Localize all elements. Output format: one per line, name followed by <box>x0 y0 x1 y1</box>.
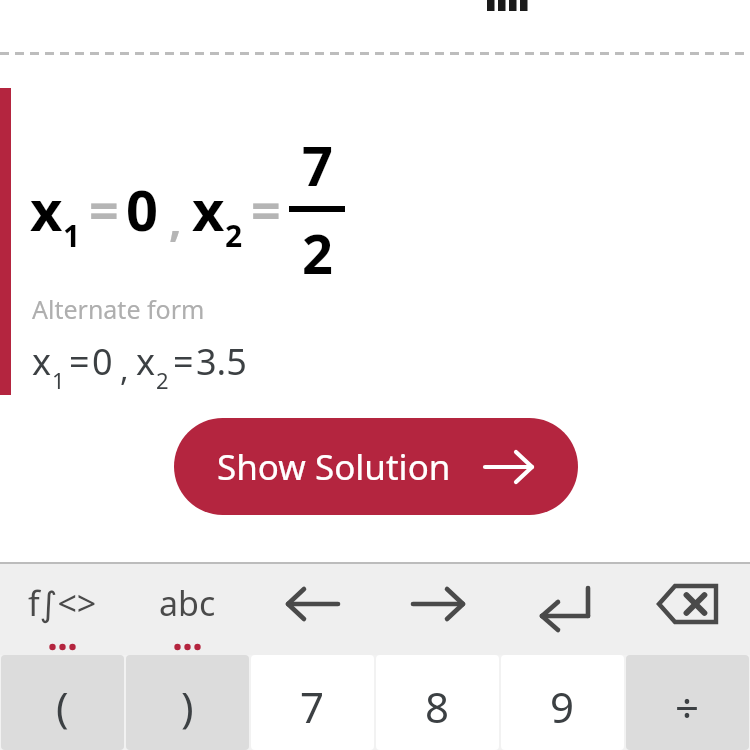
button[interactable]: f∫<> <box>0 564 125 655</box>
button[interactable]: ( <box>1 655 124 750</box>
staticText: Show Solution <box>217 443 451 491</box>
staticText: = <box>89 174 119 245</box>
button[interactable]: ) <box>126 655 249 750</box>
staticText: , <box>169 189 182 249</box>
button[interactable]: Show Solution <box>174 418 578 515</box>
staticText: 2 <box>156 365 169 395</box>
button[interactable]: abc <box>125 564 250 655</box>
staticText: abc <box>159 580 216 626</box>
staticText: 0 <box>92 337 113 386</box>
button[interactable]: Backspace <box>625 564 750 655</box>
staticText: 7 <box>302 128 333 202</box>
staticText: 8 <box>425 678 450 735</box>
staticText: 1 <box>63 215 81 256</box>
staticText: f∫<> <box>28 580 97 626</box>
button[interactable]: Enter <box>500 564 625 655</box>
staticText: 1 <box>52 365 65 395</box>
staticText: Alternate form <box>32 292 205 326</box>
staticText: ) <box>181 678 194 735</box>
staticText: 2 <box>225 215 243 256</box>
staticText: ( <box>56 678 69 735</box>
button[interactable]: Move left <box>250 564 375 655</box>
button[interactable]: 9 <box>501 655 624 750</box>
staticText: ÷ <box>675 678 700 735</box>
staticText: , <box>120 347 129 391</box>
staticText: x <box>32 337 52 386</box>
staticText: = <box>251 174 281 245</box>
staticText: x <box>192 171 225 247</box>
staticText: 3.5 <box>196 337 247 386</box>
staticText: = <box>173 337 194 386</box>
staticText: x <box>30 171 63 247</box>
button[interactable]: Move right <box>375 564 500 655</box>
button[interactable]: ÷ <box>626 655 749 750</box>
staticText: 2 <box>302 216 333 290</box>
staticText: 7 <box>300 678 325 735</box>
staticText: 9 <box>550 678 575 735</box>
button[interactable]: 7 <box>251 655 374 750</box>
staticText: x <box>136 337 156 386</box>
button[interactable]: 8 <box>376 655 499 750</box>
staticText: = <box>69 337 90 386</box>
staticText: 0 <box>126 171 159 247</box>
